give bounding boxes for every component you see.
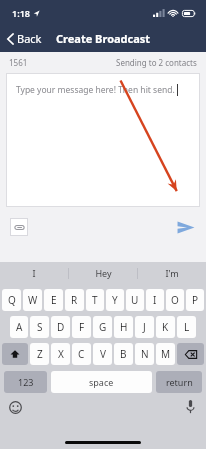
staticText: B <box>120 347 127 361</box>
button[interactable]: I <box>146 289 164 311</box>
button[interactable]: P <box>186 289 204 311</box>
button[interactable]: O <box>166 289 184 311</box>
staticText: return <box>166 376 193 388</box>
button[interactable]: space <box>51 371 152 393</box>
staticText: I <box>32 267 36 279</box>
button[interactable]: I <box>0 262 68 284</box>
button[interactable]: Attach file <box>10 218 28 236</box>
staticText: Z <box>37 347 43 361</box>
staticText: Create Broadcast <box>56 31 151 46</box>
staticText: Sending to 2 contacts <box>116 57 197 68</box>
staticText: P <box>192 293 199 307</box>
staticText: N <box>141 347 149 361</box>
button[interactable]: U <box>126 289 144 311</box>
button[interactable]: R <box>65 289 84 311</box>
button[interactable]: S <box>30 316 49 338</box>
button[interactable]: N <box>135 343 154 365</box>
staticText: I'm <box>165 267 179 279</box>
staticText: L <box>184 320 190 334</box>
button[interactable]: Q <box>2 289 21 311</box>
staticText: Type your message here! Then hit send. <box>16 84 175 96</box>
button[interactable]: Z <box>30 343 49 365</box>
staticText: K <box>162 320 169 334</box>
staticText: M <box>161 347 171 361</box>
staticText: O <box>171 293 179 307</box>
button[interactable]: Dictation <box>186 400 195 414</box>
staticText: F <box>79 320 85 334</box>
staticText: E <box>51 293 57 307</box>
button[interactable]: Back <box>0 27 50 50</box>
staticText: 1:18 <box>12 7 30 19</box>
staticText: V <box>100 347 106 361</box>
button[interactable]: E <box>44 289 63 311</box>
button[interactable]: I'm <box>138 262 206 284</box>
staticText: 123 <box>18 376 34 388</box>
button[interactable]: A <box>10 316 28 338</box>
staticText: D <box>57 320 65 334</box>
staticText: G <box>99 320 107 334</box>
button[interactable]: Send <box>174 215 198 239</box>
staticText: space <box>89 376 114 388</box>
button[interactable]: L <box>177 316 196 338</box>
button[interactable]: H <box>114 316 133 338</box>
staticText: Q <box>8 293 16 307</box>
button[interactable]: 123 <box>4 371 47 393</box>
staticText: Back <box>17 31 42 46</box>
staticText: Y <box>112 293 118 307</box>
staticText: W <box>28 293 38 307</box>
staticText: X <box>58 347 64 361</box>
button[interactable]: Hey <box>69 262 137 284</box>
button[interactable]: Emoji keyboard <box>9 401 22 414</box>
button[interactable]: T <box>86 289 104 311</box>
button[interactable]: K <box>156 316 175 338</box>
staticText: S <box>37 320 43 334</box>
staticText: H <box>120 320 128 334</box>
button[interactable]: F <box>72 316 91 338</box>
staticText: T <box>92 293 98 307</box>
button[interactable]: Y <box>106 289 124 311</box>
button[interactable]: Type your message here! Then hit send. <box>6 73 200 207</box>
staticText: A <box>16 320 23 334</box>
button[interactable]: W <box>23 289 42 311</box>
staticText: I <box>153 293 157 307</box>
button[interactable]: B <box>114 343 133 365</box>
button[interactable]: D <box>51 316 70 338</box>
button[interactable]: G <box>93 316 112 338</box>
button[interactable]: M <box>156 343 175 365</box>
button[interactable]: C <box>72 343 91 365</box>
button[interactable]: Backspace <box>177 343 204 365</box>
staticText: R <box>71 293 78 307</box>
staticText: 1561 <box>9 57 28 68</box>
button[interactable]: J <box>135 316 154 338</box>
button[interactable]: return <box>156 371 202 393</box>
button[interactable]: X <box>51 343 70 365</box>
staticText: C <box>78 347 85 361</box>
staticText: Hey <box>95 267 112 279</box>
button[interactable]: Shift <box>2 343 28 365</box>
staticText: J <box>143 320 146 334</box>
staticText: U <box>131 293 139 307</box>
button[interactable]: V <box>93 343 112 365</box>
